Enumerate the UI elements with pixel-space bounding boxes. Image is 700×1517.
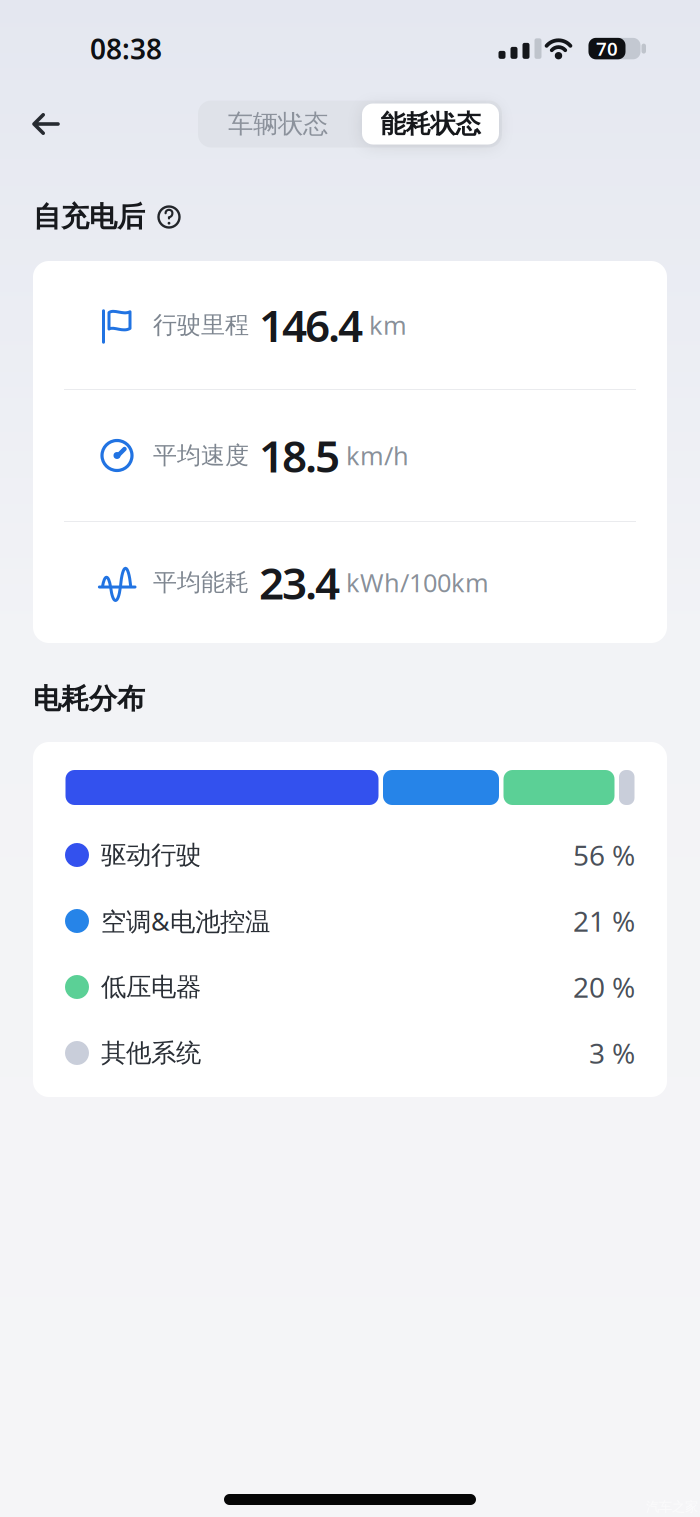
staticText: 驱动行驶 — [101, 839, 201, 870]
staticText: km/h — [346, 439, 409, 472]
staticText: 20 % — [573, 968, 635, 1006]
staticText: 146.4 — [259, 296, 363, 354]
staticText: 能耗状态 — [380, 108, 480, 139]
staticText: 电耗分布 — [33, 682, 145, 716]
staticText: 21 % — [573, 902, 635, 940]
button[interactable]: 车辆状态 — [198, 100, 358, 147]
staticText: 低压电器 — [101, 971, 201, 1002]
staticText: 56 % — [573, 836, 635, 874]
staticText: 08:38 — [90, 30, 162, 67]
staticText: 3 % — [589, 1034, 635, 1072]
staticText: 其他系统 — [101, 1037, 201, 1068]
staticText: 18.5 — [259, 426, 340, 485]
staticText: 自充电后 — [33, 200, 145, 234]
staticText: 平均能耗 — [153, 568, 249, 597]
staticText: 空调&电池控温 — [101, 904, 270, 938]
button[interactable]: Back — [0, 100, 78, 148]
button[interactable]: 帮助 — [158, 206, 180, 228]
button[interactable]: 能耗状态 — [362, 103, 499, 144]
staticText: km — [369, 308, 407, 342]
staticText: kWh/100km — [346, 566, 489, 599]
staticText: 车辆状态 — [228, 108, 328, 139]
staticText: 23.4 — [259, 553, 340, 612]
staticText: 行驶里程 — [153, 310, 249, 340]
staticText: 平均速度 — [153, 441, 249, 470]
staticText: 70 — [596, 36, 618, 61]
